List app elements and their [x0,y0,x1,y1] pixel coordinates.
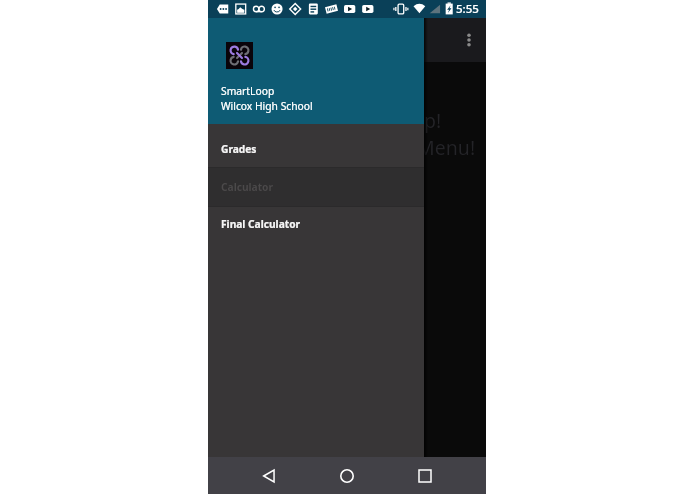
button[interactable]: Calculator [208,168,424,206]
button[interactable]: Home [330,459,364,493]
staticText: Welcome to SmartLoop! [222,107,442,134]
button[interactable]: Recent apps [408,459,442,493]
button[interactable]: Final Calculator [208,207,424,245]
button[interactable]: Back [252,459,286,493]
button[interactable]: SmartLoop [208,18,424,124]
staticText: Calculator [221,180,274,194]
button[interactable]: Grades [208,124,424,167]
staticText: Grades [221,142,257,156]
staticText: Open the Navigation Menu! [222,134,476,161]
staticText: 5:55 [456,1,479,17]
staticText: Final Calculator [221,217,301,231]
staticText: Wilcox High School [221,99,313,113]
staticText: SmartLoop [221,84,275,98]
button[interactable]: More options [452,23,486,57]
